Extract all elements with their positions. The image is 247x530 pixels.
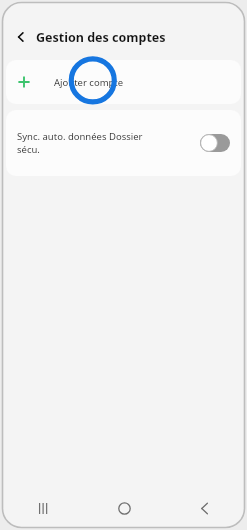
button[interactable]: Retour (164, 488, 244, 528)
button[interactable]: Accueil (84, 488, 164, 528)
staticText: Ajouter compte (54, 76, 124, 89)
button[interactable]: Applications récentes (3, 488, 84, 528)
button[interactable]: Retour (10, 26, 32, 48)
button[interactable]: Synchronisation automatique (200, 134, 230, 152)
staticText: Sync. auto. données Dossier sécu. (17, 130, 167, 156)
staticText: Gestion des comptes (36, 29, 166, 46)
button[interactable]: Ajouter compte (6, 60, 241, 104)
button[interactable]: Sync. auto. données Dossier sécu. (6, 110, 241, 176)
